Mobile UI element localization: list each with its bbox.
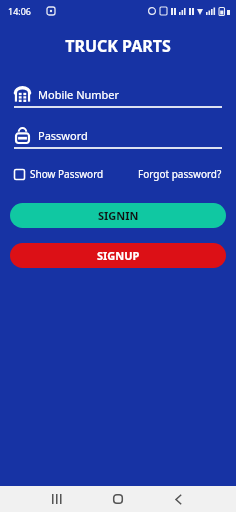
staticText: SIGNUP [97, 248, 140, 263]
staticText: SIGNIN [98, 208, 139, 223]
staticText: TRUCK PARTS [0, 35, 236, 57]
button[interactable] [36, 486, 78, 512]
button[interactable] [97, 486, 139, 512]
button[interactable]: Show Password [14, 167, 104, 181]
staticText: Mobile Number [38, 87, 120, 102]
staticText: Show Password [30, 167, 104, 181]
button[interactable]: Password [14, 125, 222, 149]
staticText: Password [38, 128, 88, 143]
staticText: 14:06 [8, 5, 32, 17]
button[interactable] [157, 486, 199, 512]
button[interactable]: Mobile Number [14, 84, 222, 108]
button[interactable]: Forgot password? [138, 167, 222, 181]
button[interactable]: SIGNIN [10, 203, 226, 228]
button[interactable]: SIGNUP [10, 243, 226, 268]
